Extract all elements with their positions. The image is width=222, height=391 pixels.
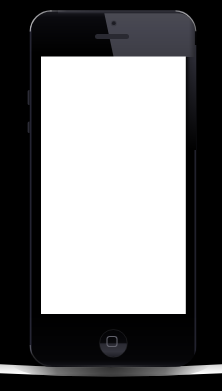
button[interactable]: Phone mockup bbox=[0, 0, 222, 391]
